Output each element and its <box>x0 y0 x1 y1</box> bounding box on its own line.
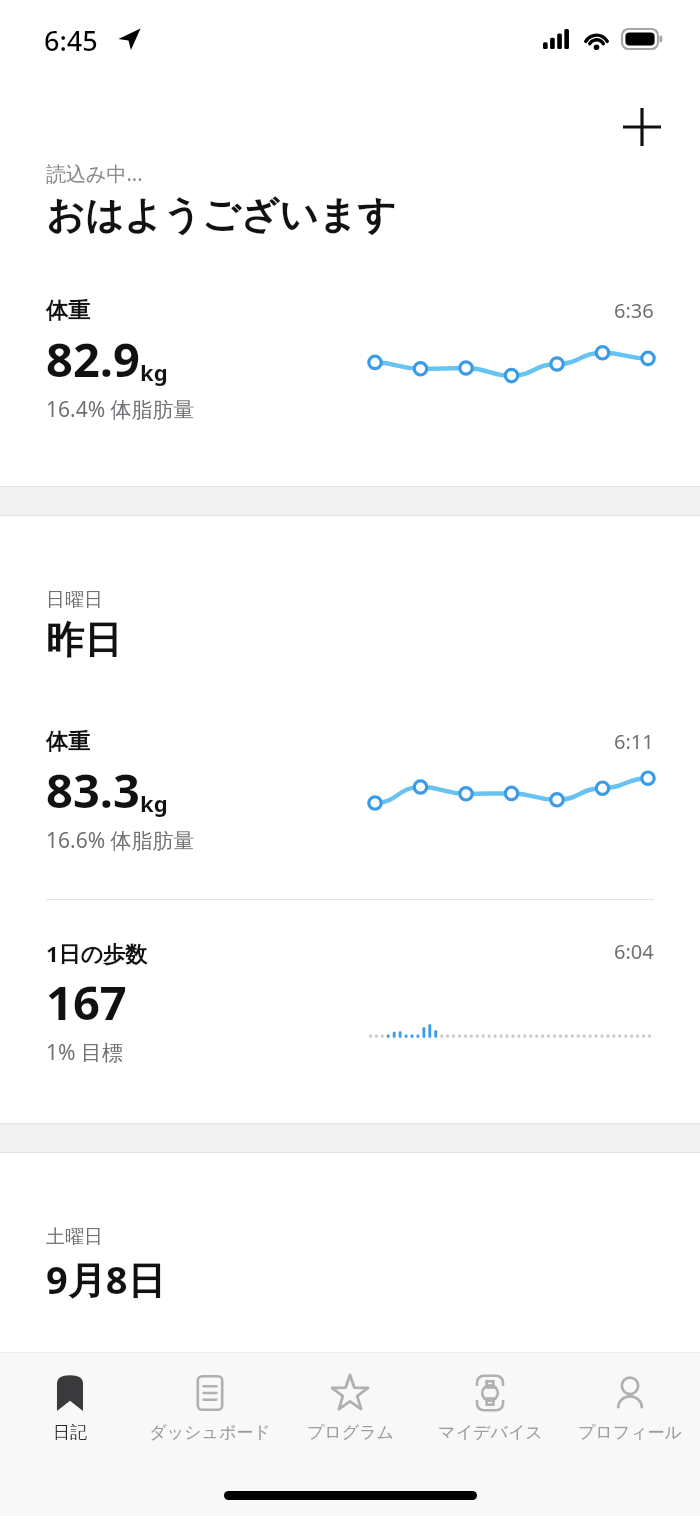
button[interactable]: Add <box>614 99 670 155</box>
button[interactable]: 体重 <box>0 297 700 424</box>
staticText: プログラム <box>307 1422 394 1443</box>
staticText: 6:11 <box>614 728 654 755</box>
button[interactable]: プログラム <box>280 1353 420 1461</box>
staticText: 体重 <box>46 728 90 756</box>
staticText: 1% 目標 <box>46 1038 123 1067</box>
staticText: 6:36 <box>614 297 654 324</box>
staticText: 9月8日 <box>46 1253 166 1305</box>
staticText: kg <box>140 357 168 387</box>
staticText: 16.4% 体脂肪量 <box>46 395 195 424</box>
staticText: 6:04 <box>614 938 654 965</box>
button[interactable]: マイデバイス <box>420 1353 560 1461</box>
staticText: 体重 <box>46 297 90 325</box>
staticText: ダッシュボード <box>149 1422 271 1443</box>
staticText: 日曜日 <box>46 588 103 612</box>
staticText: 日記 <box>53 1422 87 1443</box>
staticText: 82.9 <box>46 327 140 391</box>
button[interactable]: 1日の歩数 <box>0 938 700 1067</box>
button[interactable]: 体重 <box>0 728 700 855</box>
staticText: 読込み中... <box>46 160 143 187</box>
staticText: 167 <box>46 970 127 1034</box>
staticText: おはようございます <box>46 191 397 239</box>
staticText: プロフィール <box>578 1422 682 1443</box>
staticText: 土曜日 <box>46 1225 103 1249</box>
staticText: 1日の歩数 <box>46 938 148 968</box>
staticText: 昨日 <box>46 616 122 664</box>
staticText: 83.3 <box>46 758 140 822</box>
staticText: マイデバイス <box>438 1422 543 1443</box>
button[interactable]: プロフィール <box>560 1353 700 1461</box>
staticText: 6:45 <box>44 22 98 59</box>
staticText: 16.6% 体脂肪量 <box>46 826 195 855</box>
staticText: 1日の歩数 <box>46 1365 143 1394</box>
staticText: kg <box>140 788 168 818</box>
button[interactable]: 日記 <box>0 1353 140 1461</box>
button[interactable]: ダッシュボード <box>140 1353 280 1461</box>
